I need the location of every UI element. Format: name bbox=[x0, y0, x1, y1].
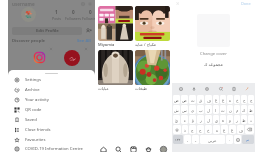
button[interactable]: خ bbox=[234, 95, 240, 104]
button[interactable] bbox=[98, 6, 133, 41]
button[interactable] bbox=[135, 50, 170, 85]
button[interactable]: ئ bbox=[173, 115, 180, 124]
staticText: تم bbox=[246, 138, 250, 142]
staticText: Done bbox=[241, 1, 251, 6]
button[interactable]: ه bbox=[213, 125, 220, 134]
button[interactable]: ف bbox=[237, 125, 244, 134]
button[interactable]: QR code bbox=[8, 105, 95, 115]
button[interactable]: Backspace bbox=[245, 125, 254, 134]
button[interactable]: ك bbox=[241, 105, 247, 114]
button[interactable]: Dismiss suggestion bbox=[84, 47, 88, 51]
button[interactable] bbox=[135, 6, 170, 41]
button[interactable]: Settings bbox=[8, 75, 95, 85]
button[interactable]: ع bbox=[220, 95, 226, 104]
button[interactable]: Saved bbox=[8, 115, 95, 125]
staticText: مكياج / عناية bbox=[135, 42, 156, 47]
button[interactable]: Reels bbox=[129, 145, 137, 152]
button[interactable]: Archive bbox=[8, 85, 95, 95]
button[interactable]: ش bbox=[173, 105, 180, 114]
button[interactable]: Emoji bbox=[178, 86, 183, 91]
staticText: ✕ bbox=[176, 1, 180, 6]
button[interactable]: Dismiss suggestion bbox=[49, 47, 53, 51]
button[interactable]: س bbox=[181, 105, 188, 114]
button[interactable]: Your activity bbox=[8, 95, 95, 105]
button[interactable]: ١٢٣ bbox=[173, 135, 183, 144]
button[interactable]: . bbox=[226, 135, 233, 144]
staticText: ض bbox=[174, 98, 179, 102]
staticText: ج bbox=[191, 128, 194, 132]
button[interactable]: ء bbox=[181, 115, 188, 124]
button[interactable]: More bbox=[244, 86, 249, 91]
button[interactable]: ض bbox=[173, 95, 180, 104]
button[interactable]: ي bbox=[189, 105, 196, 114]
staticText: username bbox=[12, 1, 35, 7]
button[interactable]: Change cover bbox=[200, 51, 227, 57]
button[interactable] bbox=[33, 51, 46, 64]
button[interactable]: ل bbox=[205, 115, 212, 124]
button[interactable]: Settings bbox=[204, 86, 209, 91]
button[interactable]: ط bbox=[248, 105, 254, 114]
button[interactable]: ظ bbox=[241, 115, 247, 124]
button[interactable] bbox=[98, 50, 133, 85]
staticText: عربي bbox=[208, 138, 217, 142]
button[interactable]: عربي bbox=[200, 135, 225, 144]
button[interactable]: ل bbox=[205, 105, 212, 114]
staticText: Archive bbox=[25, 87, 40, 93]
button[interactable]: ت bbox=[220, 105, 226, 114]
button[interactable]: ب bbox=[197, 105, 204, 114]
staticText: 1 bbox=[55, 9, 58, 15]
button[interactable]: ى bbox=[213, 115, 219, 124]
button[interactable]: ص bbox=[181, 95, 188, 104]
staticText: م bbox=[236, 108, 239, 112]
button[interactable]: ؤ bbox=[189, 115, 196, 124]
button[interactable]: Themes bbox=[231, 86, 236, 91]
button[interactable]: ح bbox=[241, 95, 247, 104]
staticText: ف bbox=[207, 98, 211, 102]
button[interactable]: ر bbox=[197, 115, 204, 124]
button[interactable]: ـ bbox=[192, 135, 199, 144]
button[interactable]: ن bbox=[227, 105, 233, 114]
button[interactable]: ة bbox=[220, 115, 226, 124]
button[interactable]: Emoji bbox=[234, 135, 241, 144]
button[interactable]: Voice bbox=[191, 86, 196, 91]
button[interactable]: Translate bbox=[218, 86, 223, 91]
button[interactable]: , bbox=[184, 135, 191, 144]
button[interactable]: ف bbox=[205, 95, 212, 104]
button[interactable]: تم bbox=[242, 135, 254, 144]
button[interactable]: ج bbox=[189, 125, 196, 134]
button[interactable]: ا bbox=[213, 105, 219, 114]
staticText: ش bbox=[174, 108, 179, 112]
button[interactable]: Shop bbox=[144, 145, 152, 152]
button[interactable]: Edit Profile bbox=[12, 27, 82, 35]
button[interactable] bbox=[64, 50, 80, 66]
button[interactable]: Shift bbox=[173, 125, 181, 134]
button[interactable]: ج bbox=[248, 95, 254, 104]
staticText: ح bbox=[243, 98, 246, 102]
button[interactable]: Search bbox=[114, 145, 122, 152]
button[interactable]: ق bbox=[197, 95, 204, 104]
button[interactable]: Home bbox=[99, 145, 107, 152]
button[interactable]: Close friends bbox=[8, 125, 95, 135]
button[interactable] bbox=[21, 7, 36, 22]
button[interactable]: د bbox=[248, 115, 254, 124]
button[interactable]: ذ bbox=[182, 125, 188, 134]
button[interactable]: ع bbox=[221, 125, 228, 134]
button[interactable]: ث bbox=[189, 95, 196, 104]
button[interactable]: Profile bbox=[159, 145, 167, 152]
button[interactable]: ه bbox=[227, 95, 233, 104]
button[interactable]: ح bbox=[197, 125, 204, 134]
button[interactable]: خ bbox=[205, 125, 212, 134]
button[interactable]: غ bbox=[229, 125, 236, 134]
button[interactable]: Discover people bbox=[85, 27, 93, 35]
button[interactable]: ز bbox=[234, 115, 240, 124]
staticText: ا bbox=[215, 108, 217, 112]
button[interactable]: COVID-19 Information Centre bbox=[8, 145, 95, 152]
staticText: ب bbox=[199, 108, 203, 112]
button[interactable]: م bbox=[234, 105, 240, 114]
button[interactable]: غ bbox=[213, 95, 219, 104]
button[interactable]: و bbox=[227, 115, 233, 124]
button[interactable]: Favourites bbox=[8, 135, 95, 145]
